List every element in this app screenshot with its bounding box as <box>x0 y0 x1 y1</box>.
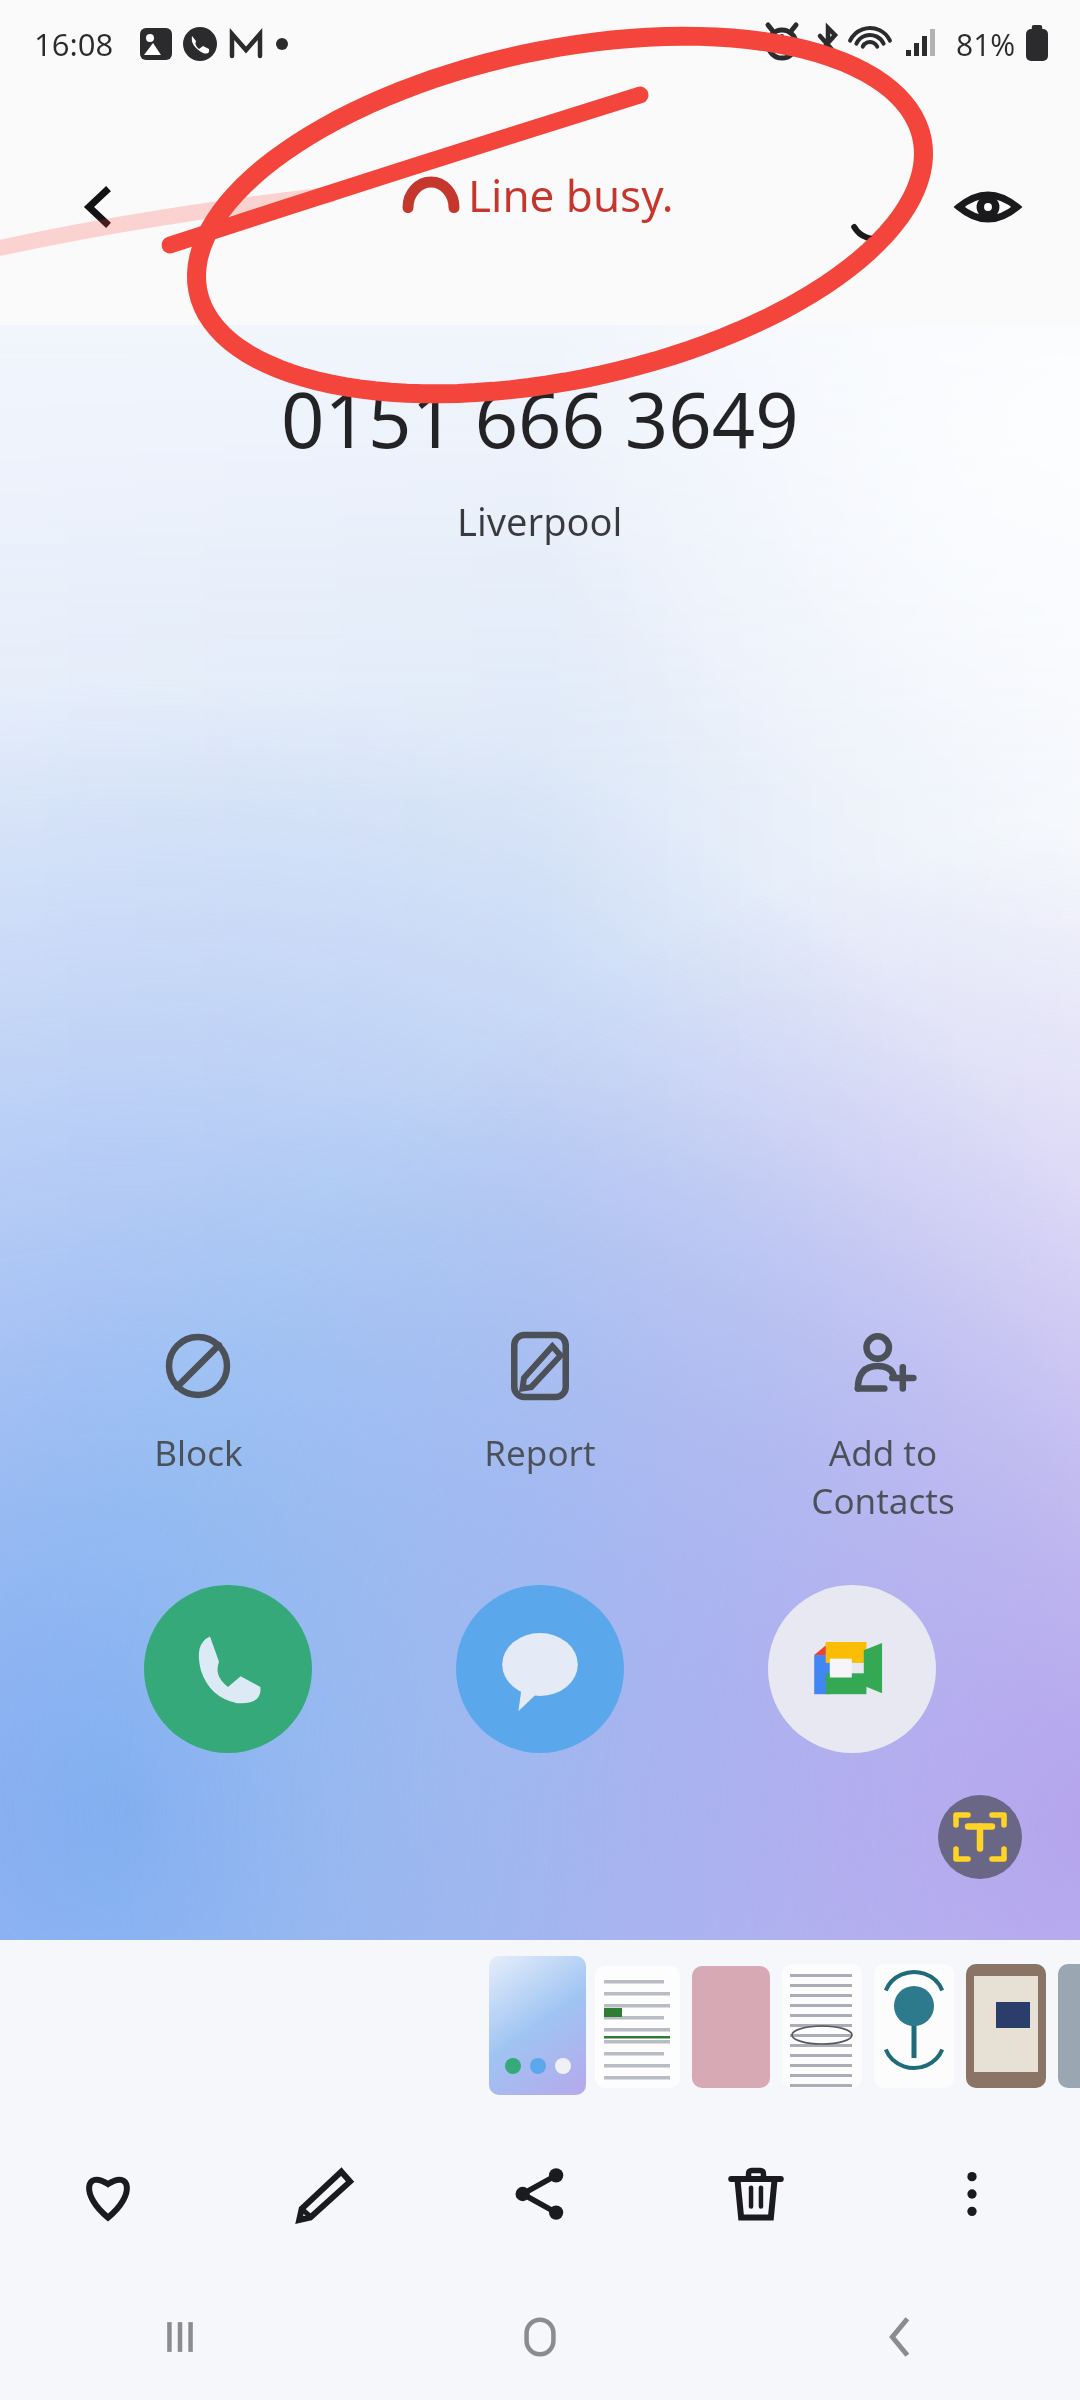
staticText: Block <box>154 1429 243 1477</box>
button[interactable]: Back <box>720 2273 1080 2400</box>
button[interactable]: Call <box>144 1585 312 1753</box>
staticText: Add to Contacts <box>811 1429 955 1525</box>
button[interactable]: Block <box>53 1325 343 1485</box>
button[interactable]: View <box>938 157 1038 257</box>
button[interactable]: Delete <box>648 2115 864 2273</box>
staticText: Liverpool <box>457 495 623 547</box>
button[interactable]: Edit <box>216 2115 432 2273</box>
button[interactable]: Recent apps <box>0 2273 360 2400</box>
button[interactable]: Favourite <box>0 2115 216 2273</box>
staticText: 16:08 <box>34 23 114 65</box>
staticText: Report <box>484 1429 596 1477</box>
button[interactable]: Home <box>360 2273 720 2400</box>
button[interactable]: Extract text <box>938 1795 1022 1879</box>
button[interactable]: Share <box>432 2115 648 2273</box>
button[interactable]: Video call <box>768 1585 936 1753</box>
staticText: Line busy. <box>468 165 674 225</box>
button[interactable]: More options <box>864 2115 1080 2273</box>
staticText: 81% <box>956 24 1016 65</box>
button[interactable]: Message <box>456 1585 624 1753</box>
staticText: 0151 666 3649 <box>281 367 799 471</box>
button[interactable]: Back <box>46 154 152 260</box>
button[interactable]: Report <box>395 1325 685 1485</box>
button[interactable]: Add to Contacts <box>738 1325 1028 1533</box>
